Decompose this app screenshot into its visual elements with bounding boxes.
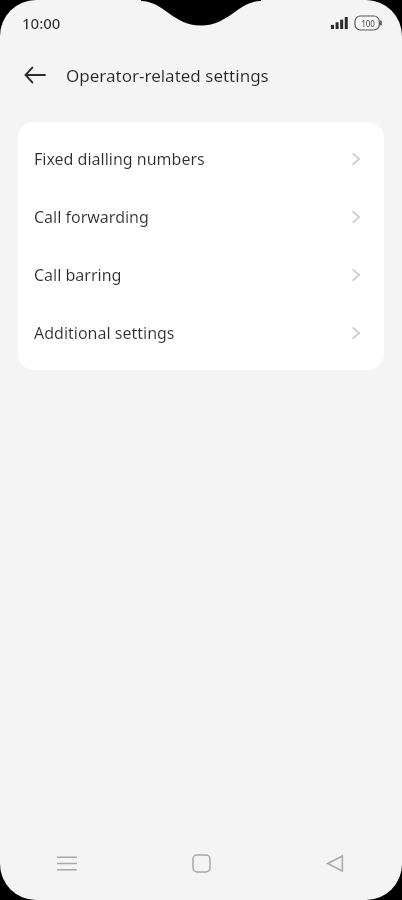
button[interactable]: Additional settings [18,304,384,362]
button[interactable]: Fixed dialling numbers [18,130,384,188]
button[interactable]: Recent apps [43,839,91,887]
staticText: Call barring [34,264,122,286]
button[interactable]: Home [177,839,225,887]
staticText: Operator-related settings [66,64,269,87]
button[interactable]: Back [311,839,359,887]
staticText: Fixed dialling numbers [34,148,205,170]
staticText: Call forwarding [34,206,149,228]
button[interactable]: Call forwarding [18,188,384,246]
staticText: 10:00 [22,13,61,33]
button[interactable]: Call barring [18,246,384,304]
staticText: Additional settings [34,322,175,344]
button[interactable]: Back [14,54,56,96]
staticText: 100 [361,18,375,29]
